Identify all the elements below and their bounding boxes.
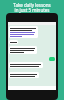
staticText: Take daily lessons in just 5 minutes <box>13 2 51 13</box>
